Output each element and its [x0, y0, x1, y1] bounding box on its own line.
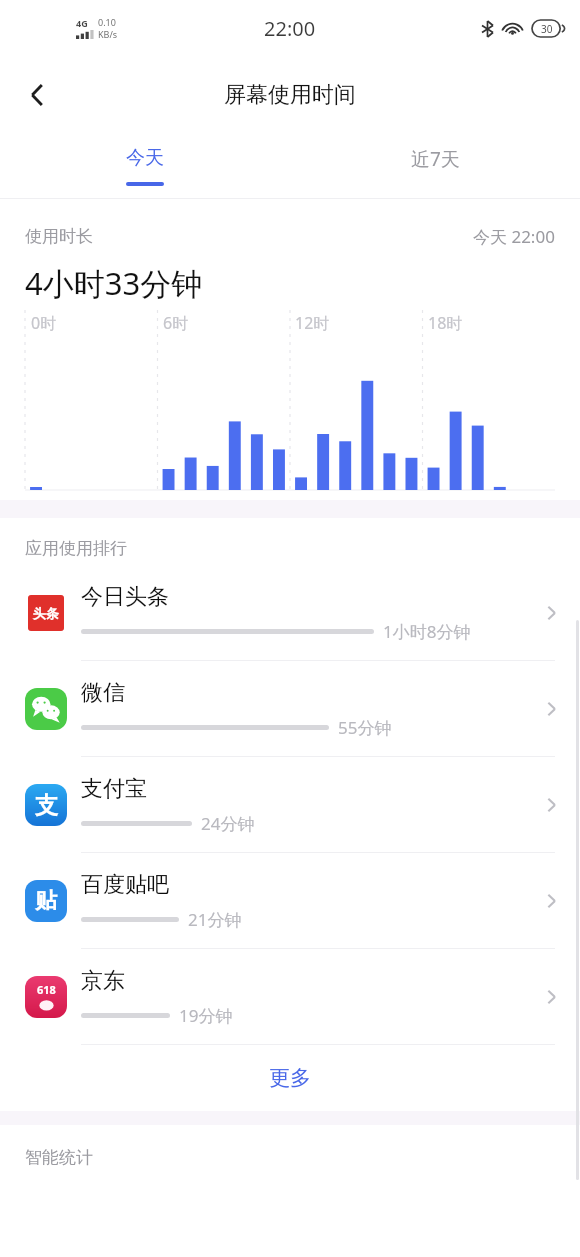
staticText: 4小时33分钟 [25, 262, 203, 304]
staticText: 今天 [126, 146, 164, 170]
button[interactable]: 近7天 [290, 134, 580, 198]
staticText: 京东 [81, 967, 125, 995]
staticText: 屏幕使用时间 [224, 81, 356, 109]
staticText: 应用使用排行 [25, 538, 127, 559]
staticText: 22:00 [264, 15, 316, 42]
staticText: 12时 [295, 312, 330, 334]
staticText: 55分钟 [338, 716, 392, 739]
staticText: 头条 [33, 605, 59, 621]
button[interactable]: 618 [0, 949, 580, 1044]
button[interactable]: 今天 [0, 134, 290, 198]
staticText: 近7天 [411, 146, 460, 172]
staticText: 6时 [163, 312, 189, 334]
staticText: 支付宝 [81, 775, 147, 803]
staticText: 1小时8分钟 [383, 620, 471, 643]
button[interactable]: 更多 [0, 1045, 580, 1111]
staticText: 19分钟 [179, 1004, 233, 1027]
button[interactable]: 支 [0, 757, 580, 852]
button[interactable]: Back [10, 67, 66, 123]
staticText: 支 [35, 791, 58, 820]
staticText: 21分钟 [188, 908, 242, 931]
staticText: 使用时长 [25, 226, 93, 247]
staticText: KB/s [98, 28, 118, 40]
staticText: 今日头条 [81, 583, 169, 611]
staticText: 今天 22:00 [473, 225, 555, 248]
staticText: 4G [76, 17, 88, 29]
staticText: 贴 [35, 887, 57, 915]
staticText: 智能统计 [25, 1147, 93, 1168]
staticText: 618 [37, 982, 56, 997]
staticText: 更多 [269, 1065, 311, 1091]
button[interactable]: 贴 [0, 853, 580, 948]
staticText: 24分钟 [201, 812, 255, 835]
staticText: 微信 [81, 679, 125, 707]
staticText: 0.10 [98, 16, 116, 28]
staticText: 百度贴吧 [81, 871, 169, 899]
button[interactable]: 头条 [0, 565, 580, 660]
staticText: 18时 [428, 312, 463, 334]
staticText: 30 [541, 22, 553, 36]
staticText: 0时 [31, 312, 57, 334]
button[interactable]: 微信 [0, 661, 580, 756]
